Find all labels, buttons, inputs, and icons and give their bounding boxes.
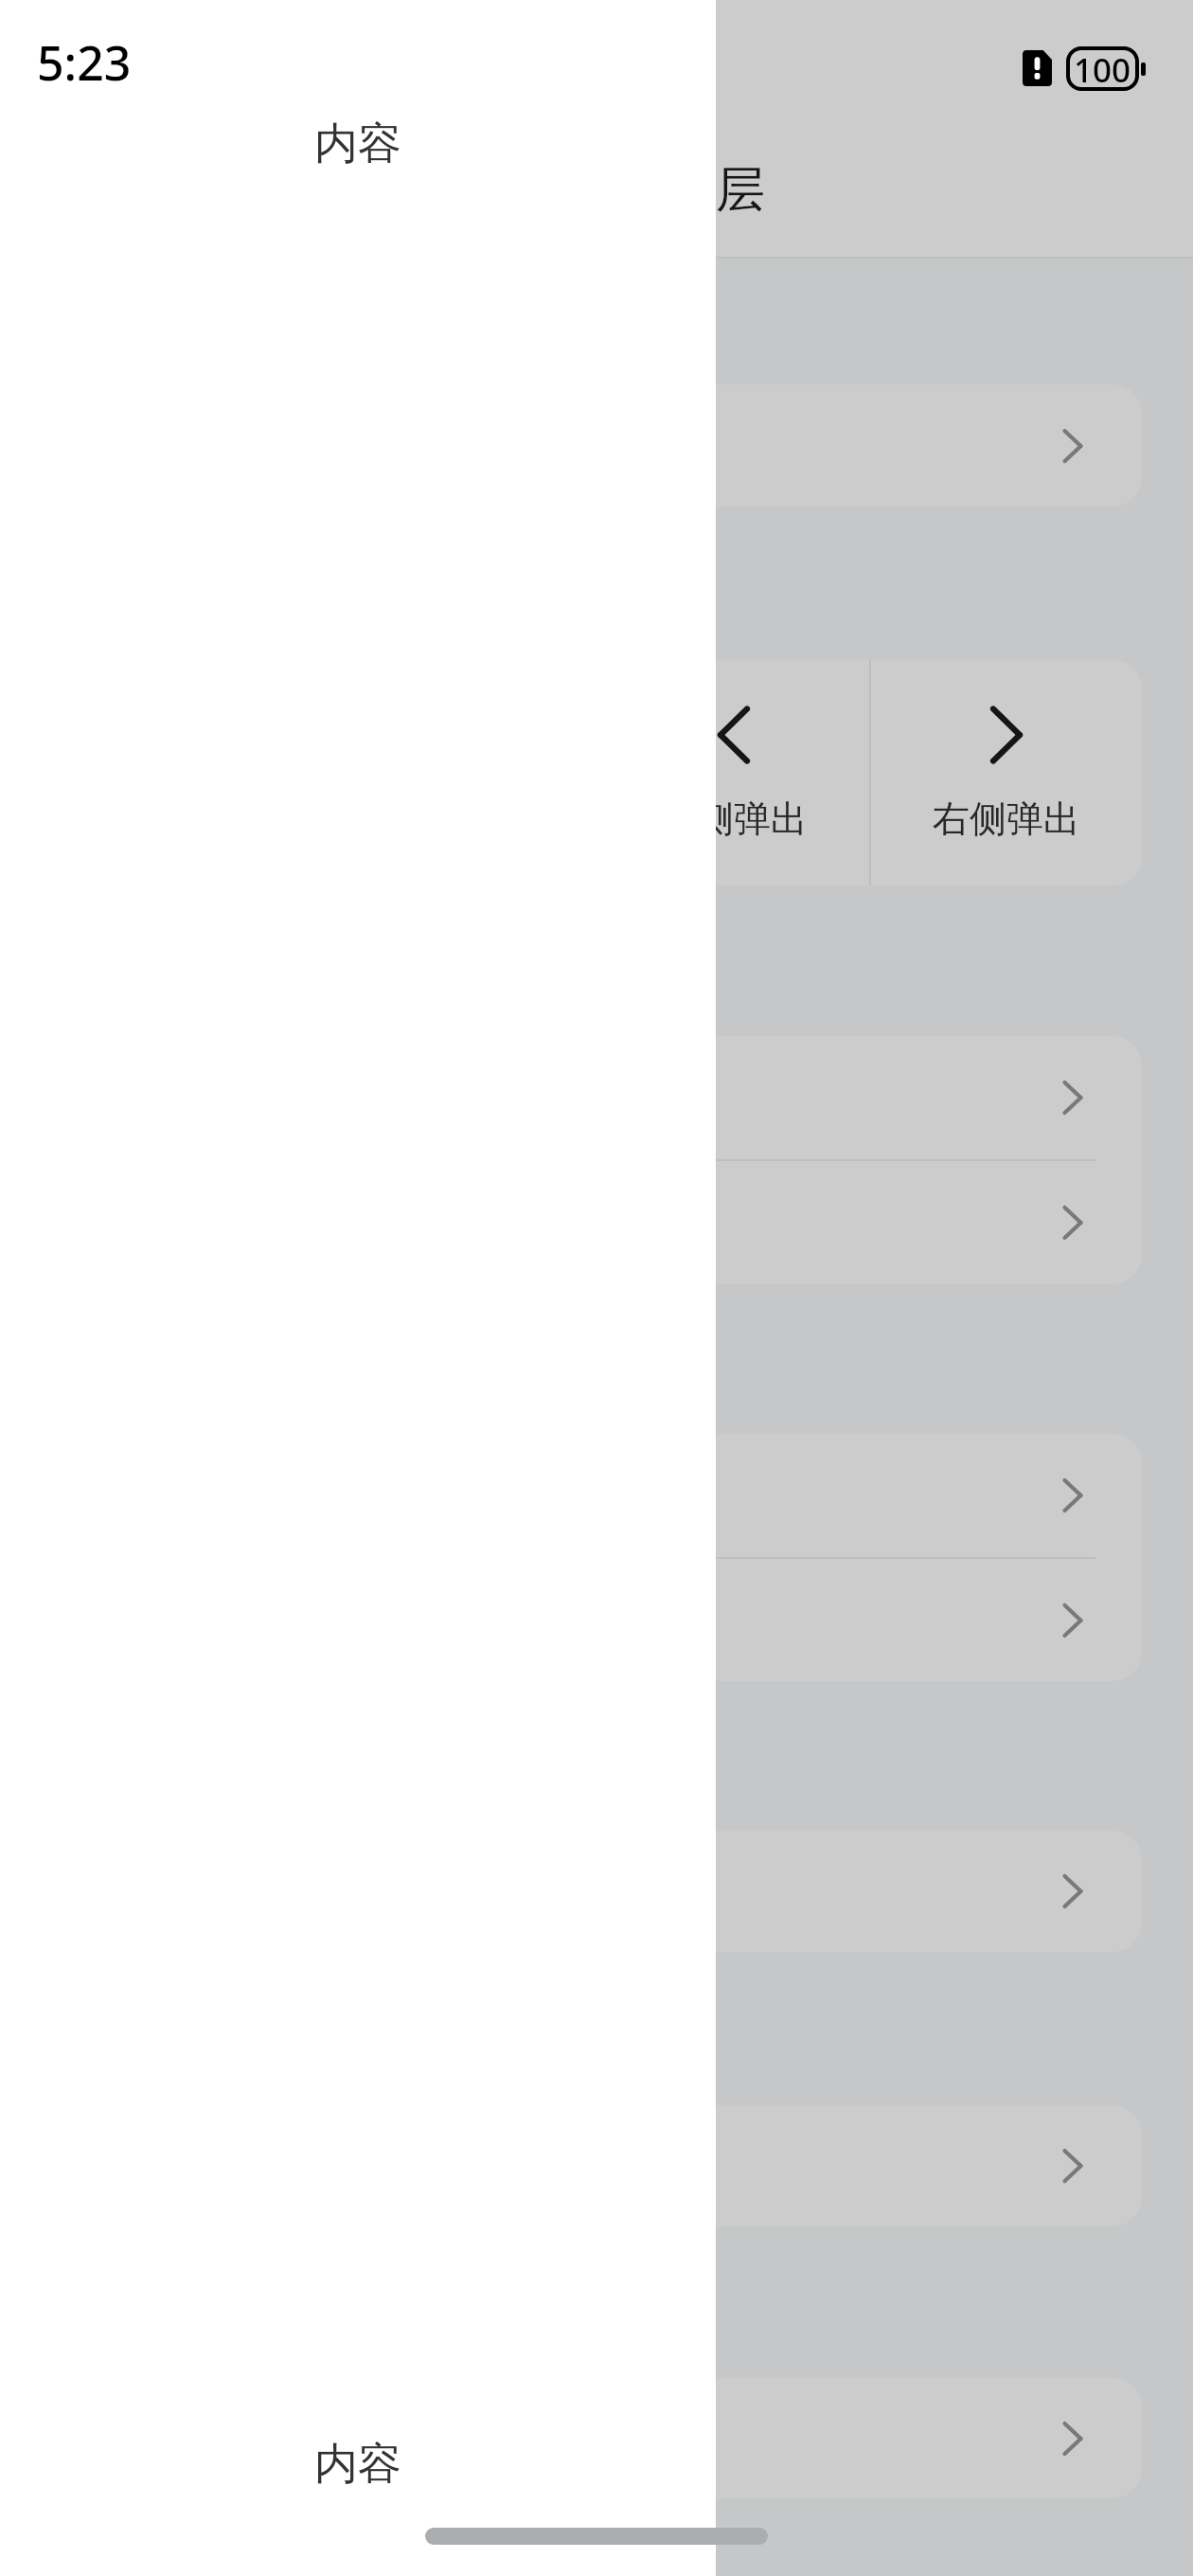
button[interactable]: 指定挂载节点 bbox=[51, 1831, 1142, 1952]
staticText: 内容 bbox=[314, 116, 401, 171]
staticText: 右侧弹出 bbox=[933, 796, 1080, 842]
button[interactable]: 关闭图标 bbox=[51, 1036, 1142, 1159]
staticText: 弹出层 bbox=[617, 159, 765, 222]
button[interactable]: 自定义图标 bbox=[51, 1161, 1142, 1284]
staticText: 5:23 bbox=[37, 30, 132, 95]
button[interactable]: 自定义圆角 bbox=[51, 1559, 1142, 1681]
button[interactable]: 右侧弹出 bbox=[871, 659, 1142, 885]
button[interactable]: 左侧弹出 bbox=[598, 659, 869, 885]
staticText: 左侧弹出 bbox=[660, 796, 808, 842]
staticText: 内容 bbox=[314, 2437, 401, 2492]
button[interactable]: Close popup bbox=[0, 0, 1193, 2576]
button[interactable]: 圆角弹窗 bbox=[51, 1434, 1142, 1557]
button[interactable]: 展示弹出层 bbox=[51, 385, 1142, 507]
button[interactable]: 监听点击事件 bbox=[51, 2105, 1142, 2227]
staticText: 100 bbox=[1074, 47, 1131, 88]
button[interactable]: Left popup panel bbox=[0, 0, 716, 2576]
button[interactable]: 多层堆叠 bbox=[51, 2378, 1142, 2498]
